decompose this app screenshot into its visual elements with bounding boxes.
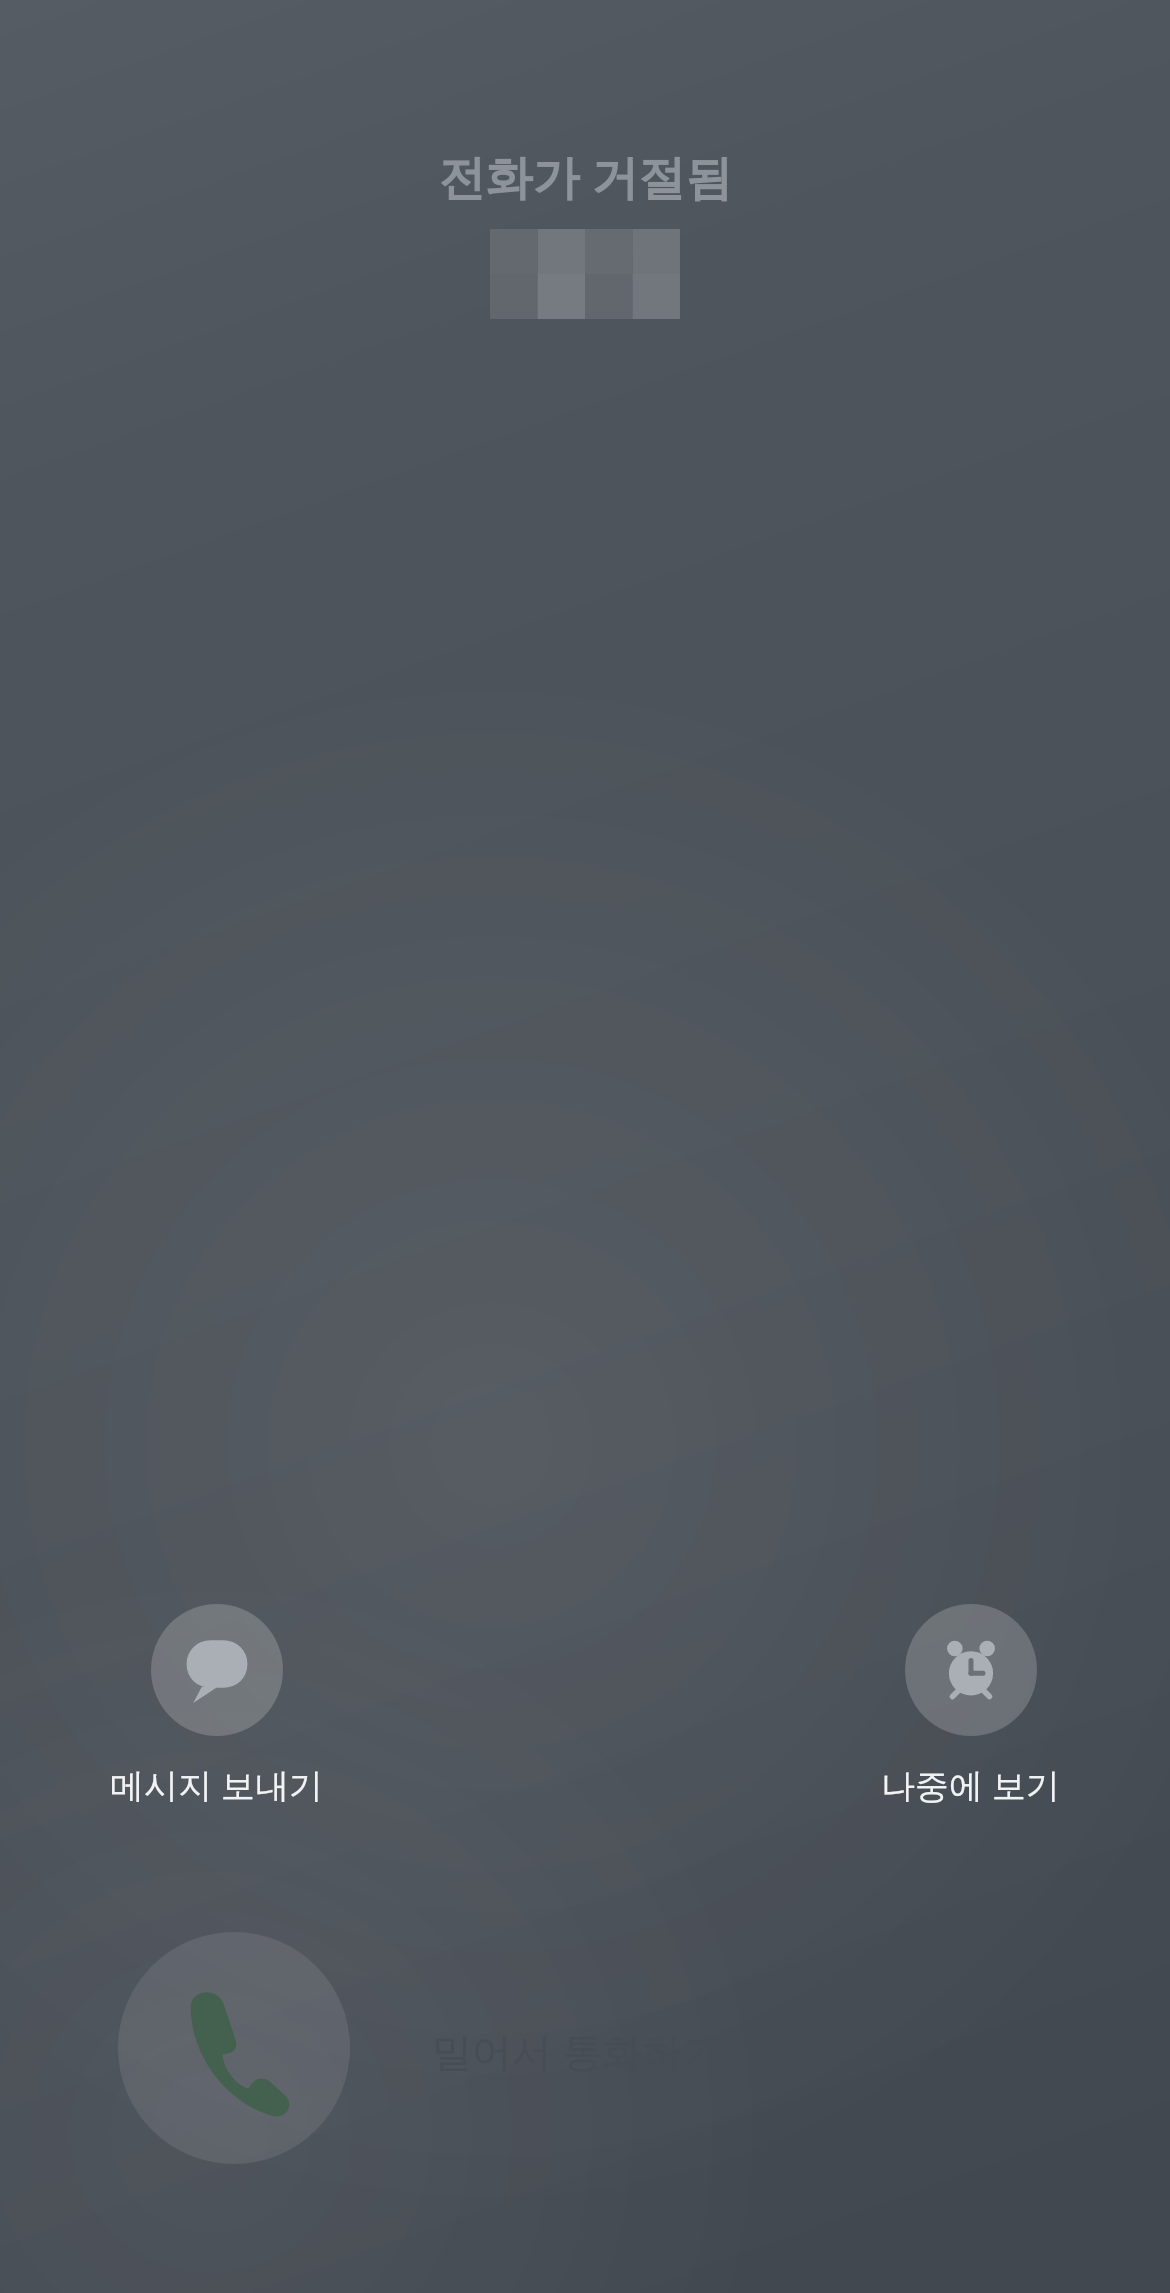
button[interactable]: Answer call [118, 1932, 350, 2164]
button[interactable]: Remind me later [873, 1600, 1068, 1812]
button[interactable]: Send message [102, 1600, 331, 1812]
staticText: 전화가 거절됨 [438, 144, 733, 208]
staticText: 메시지 보내기 [110, 1762, 323, 1808]
staticText: 나중에 보기 [881, 1762, 1060, 1808]
